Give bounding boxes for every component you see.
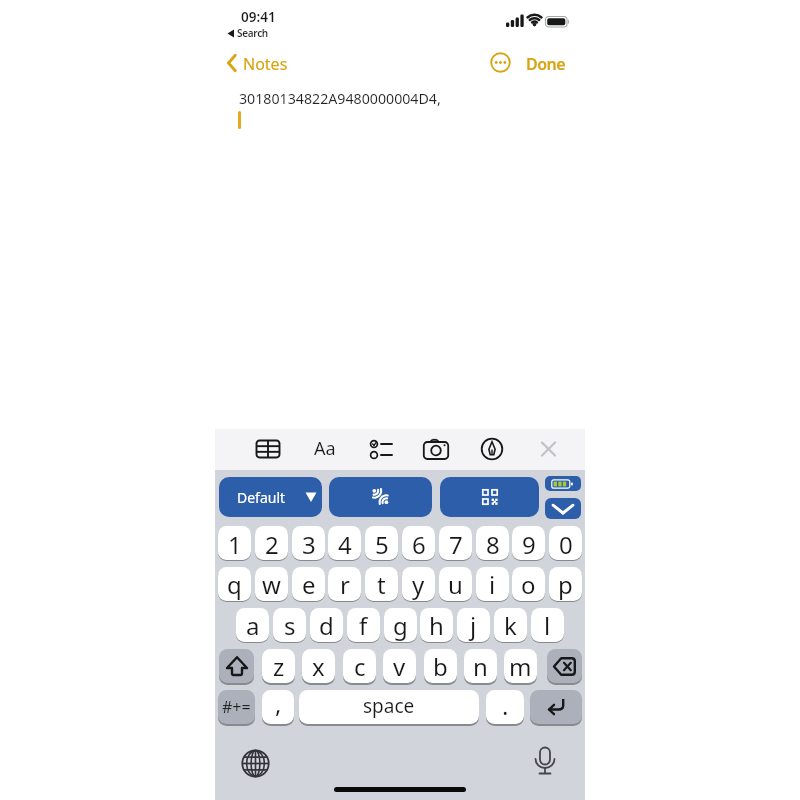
button[interactable]	[440, 477, 539, 517]
button[interactable]: d	[310, 608, 343, 642]
button[interactable]	[219, 649, 254, 683]
button[interactable]: 8	[476, 526, 509, 560]
staticText: 6	[412, 528, 426, 560]
staticText: c	[354, 650, 366, 683]
button[interactable]: e	[292, 567, 325, 601]
staticText: .	[502, 690, 509, 722]
button[interactable]: 2	[255, 526, 288, 560]
staticText: 7	[449, 528, 463, 560]
button[interactable]	[478, 436, 508, 462]
staticText: e	[302, 568, 316, 601]
staticText: i	[489, 568, 496, 601]
staticText: Aa	[314, 436, 336, 461]
button[interactable]: l	[531, 608, 564, 642]
button[interactable]	[366, 436, 396, 462]
staticText: #+=	[222, 696, 251, 718]
button[interactable]: p	[549, 567, 582, 601]
staticText: s	[284, 609, 296, 642]
staticText: 8	[486, 528, 500, 560]
staticText: Done	[526, 53, 566, 75]
button[interactable]: y	[402, 567, 435, 601]
staticText: ,	[275, 690, 282, 720]
button[interactable]: #+=	[218, 690, 255, 724]
staticText: u	[448, 568, 463, 601]
button[interactable]: Default	[219, 477, 322, 517]
button[interactable]: c	[343, 649, 376, 683]
staticText: x	[312, 650, 325, 683]
button[interactable]: j	[457, 608, 490, 642]
staticText: f	[359, 609, 368, 642]
staticText: l	[544, 609, 551, 642]
staticText: 5	[375, 528, 389, 560]
button[interactable]	[240, 748, 271, 779]
button[interactable]	[535, 436, 563, 462]
button[interactable]: 1	[218, 526, 251, 560]
button[interactable]: g	[384, 608, 417, 642]
staticText: t	[377, 568, 386, 601]
button[interactable]	[422, 436, 452, 462]
button[interactable]	[547, 649, 582, 683]
staticText: 2	[265, 528, 279, 560]
button[interactable]: 0	[549, 526, 582, 560]
button[interactable]: Notes	[222, 50, 292, 76]
staticText: 0	[559, 528, 573, 560]
staticText: y	[412, 568, 425, 601]
button[interactable]: o	[512, 567, 545, 601]
button[interactable]: s	[273, 608, 306, 642]
staticText: m	[509, 650, 532, 683]
button[interactable]: m	[504, 649, 537, 683]
button[interactable]	[530, 690, 582, 724]
button[interactable]: k	[494, 608, 527, 642]
button[interactable]	[531, 746, 559, 782]
staticText: p	[558, 568, 573, 601]
staticText: g	[393, 609, 408, 642]
staticText: k	[504, 609, 517, 642]
staticText: w	[262, 568, 281, 601]
button[interactable]: x	[302, 649, 335, 683]
button[interactable]: q	[218, 567, 251, 601]
staticText: Notes	[243, 53, 288, 75]
button[interactable]: b	[424, 649, 457, 683]
button[interactable]: a	[236, 608, 269, 642]
button[interactable]: u	[439, 567, 472, 601]
button[interactable]	[329, 477, 432, 517]
button[interactable]	[253, 436, 283, 462]
button[interactable]: 4	[328, 526, 361, 560]
button[interactable]: t	[365, 567, 398, 601]
staticText: 30180134822A9480000004D4,	[239, 89, 441, 108]
staticText: o	[521, 568, 536, 601]
staticText: n	[473, 650, 488, 683]
staticText: v	[393, 650, 406, 683]
button[interactable]: Done	[526, 51, 571, 75]
staticText: d	[319, 609, 334, 642]
staticText: Search	[237, 26, 268, 40]
button[interactable]: v	[383, 649, 416, 683]
button[interactable]: .	[486, 690, 524, 724]
button[interactable]	[545, 476, 581, 491]
button[interactable]: 7	[439, 526, 472, 560]
button[interactable]: h	[420, 608, 453, 642]
button[interactable]: 3	[292, 526, 325, 560]
staticText: z	[273, 650, 285, 683]
button[interactable]: n	[464, 649, 497, 683]
staticText: q	[227, 568, 242, 601]
button[interactable]: 5	[365, 526, 398, 560]
staticText: h	[429, 609, 444, 642]
button[interactable]: Aa	[313, 436, 343, 462]
button[interactable]: ,	[262, 690, 294, 724]
staticText: 4	[338, 528, 352, 560]
button[interactable]: 6	[402, 526, 435, 560]
staticText: 09:41	[241, 8, 276, 26]
button[interactable]: w	[255, 567, 288, 601]
staticText: 3	[302, 528, 316, 560]
button[interactable]	[490, 52, 511, 73]
staticText: a	[246, 609, 260, 642]
button[interactable]	[545, 498, 581, 519]
button[interactable]: space	[299, 690, 479, 724]
button[interactable]: i	[476, 567, 509, 601]
staticText: Default	[237, 488, 286, 507]
button[interactable]: z	[262, 649, 295, 683]
button[interactable]: 9	[512, 526, 545, 560]
button[interactable]: r	[328, 567, 361, 601]
button[interactable]: f	[347, 608, 380, 642]
